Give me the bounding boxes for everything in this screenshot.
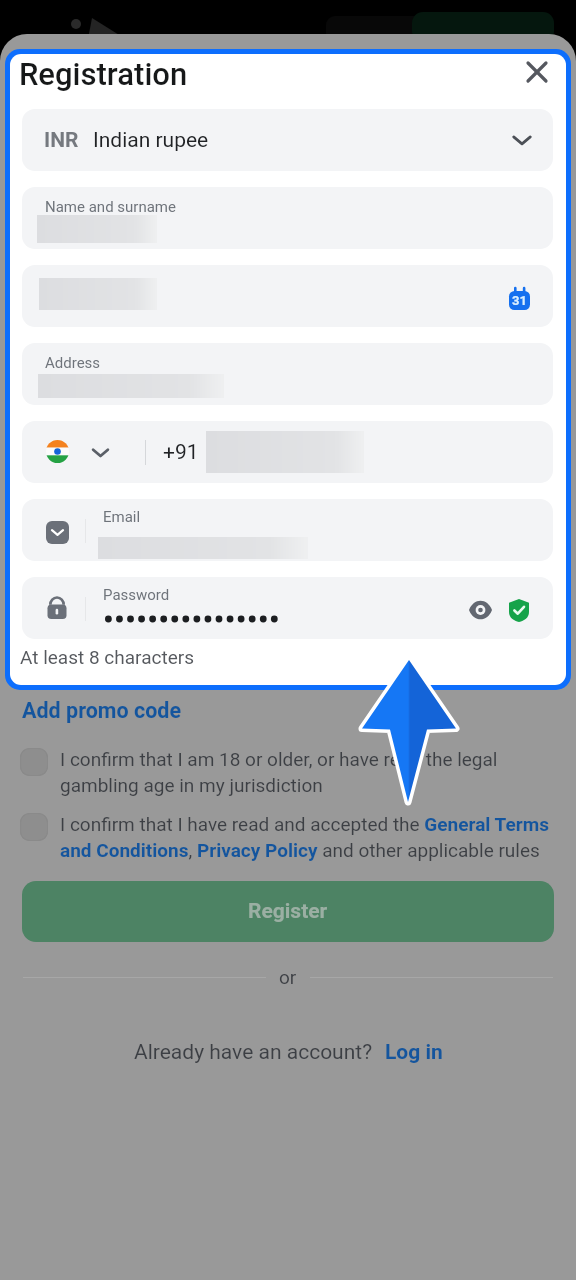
staticText: +91: [163, 440, 199, 465]
button[interactable]: INR: [22, 109, 553, 171]
button[interactable]: Close: [505, 54, 566, 104]
staticText: Email: [103, 508, 141, 526]
button[interactable]: Add promo code: [22, 698, 182, 723]
staticText: Name and surname: [45, 198, 176, 216]
staticText: INR: [44, 128, 79, 153]
button[interactable]: Log in: [385, 1040, 443, 1065]
staticText: At least 8 characters: [20, 646, 194, 668]
button[interactable]: Email: [22, 499, 553, 561]
button[interactable]: +91: [22, 421, 553, 483]
button[interactable]: I confirm that I have read and accepted …: [20, 813, 560, 862]
staticText: Already have an account?: [134, 1040, 373, 1065]
button[interactable]: 31: [22, 265, 553, 327]
button[interactable]: Register: [22, 881, 554, 942]
staticText: Log in: [385, 1040, 443, 1065]
button[interactable]: Show password: [464, 594, 496, 626]
staticText: Registration: [19, 56, 188, 92]
button[interactable]: Password: [22, 577, 553, 639]
staticText: I confirm that I have read and accepted …: [60, 813, 560, 862]
button[interactable]: Name and surname: [22, 187, 553, 249]
staticText: Register: [248, 899, 328, 924]
staticText: Address: [45, 354, 101, 372]
staticText: Add promo code: [22, 698, 182, 723]
staticText: I confirm that I am 18 or older, or have…: [60, 748, 560, 797]
staticText: 31: [512, 293, 527, 308]
staticText: Indian rupee: [93, 128, 209, 153]
staticText: Password: [103, 586, 170, 604]
button[interactable]: Address: [22, 343, 553, 405]
staticText: or: [279, 966, 297, 988]
button[interactable]: I confirm that I am 18 or older, or have…: [20, 748, 560, 797]
